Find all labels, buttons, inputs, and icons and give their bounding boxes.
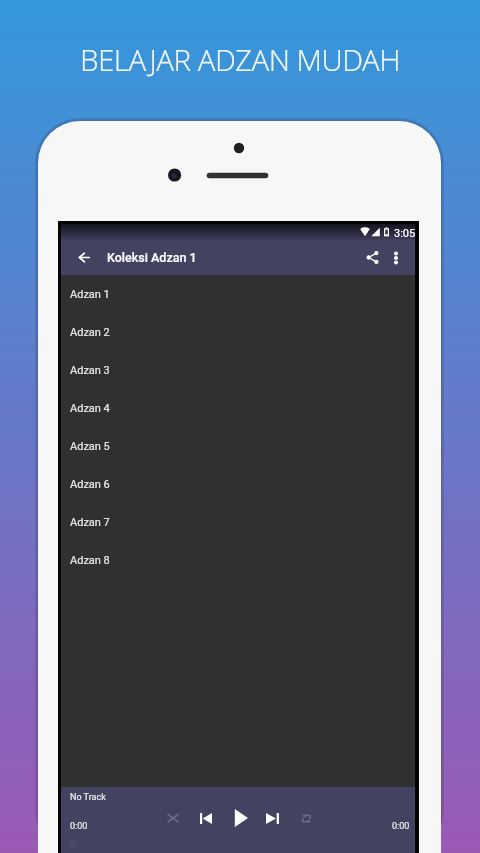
staticText: 0:00 (392, 821, 410, 832)
button[interactable]: Back (68, 240, 101, 275)
staticText: Adzan 8 (70, 554, 110, 567)
staticText: Koleksi Adzan 1 (107, 250, 197, 265)
staticText: Adzan 7 (70, 516, 110, 529)
button[interactable]: Adzan 8 (61, 541, 415, 579)
staticText: Adzan 2 (70, 326, 110, 339)
button[interactable]: Play (229, 806, 253, 830)
button[interactable]: Adzan 6 (61, 465, 415, 503)
staticText: Adzan 4 (70, 402, 110, 415)
button[interactable]: More options (382, 240, 410, 275)
staticText: No Track (70, 792, 106, 803)
button[interactable]: Adzan 5 (61, 427, 415, 465)
button[interactable]: Next (260, 806, 284, 830)
button[interactable]: Adzan 4 (61, 389, 415, 427)
staticText: BELAJAR ADZAN MUDAH (80, 39, 400, 79)
button[interactable]: Adzan 2 (61, 313, 415, 351)
button[interactable]: Shuffle (161, 806, 185, 830)
staticText: Adzan 1 (70, 288, 110, 301)
button[interactable]: Repeat (294, 806, 318, 830)
button[interactable]: Adzan 1 (61, 275, 415, 313)
button[interactable]: Adzan 3 (61, 351, 415, 389)
staticText: 3:05 (394, 227, 416, 240)
staticText: Adzan 6 (70, 478, 110, 491)
staticText: Adzan 5 (70, 440, 110, 453)
staticText: 0:00 (70, 821, 88, 832)
button[interactable]: Share (356, 240, 388, 275)
button[interactable]: Adzan 7 (61, 503, 415, 541)
staticText: Adzan 3 (70, 364, 110, 377)
button[interactable]: Previous (194, 806, 218, 830)
